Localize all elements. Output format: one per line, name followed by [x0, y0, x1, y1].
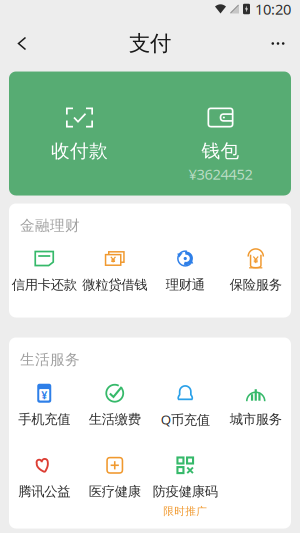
staticText: 信用卡还款 [12, 276, 77, 293]
button[interactable]: 医疗健康 [79, 455, 150, 500]
button[interactable]: 微粒贷借钱 [79, 248, 150, 293]
button[interactable]: ¥ [9, 383, 79, 428]
button[interactable]: 防疫健康码 [150, 455, 220, 518]
staticText: 医疗健康 [89, 483, 141, 500]
button[interactable]: 信用卡还款 [9, 248, 79, 293]
button[interactable]: More [261, 23, 295, 63]
staticText: 城市服务 [230, 411, 282, 428]
staticText: ¥ [41, 388, 47, 402]
button[interactable]: 生活缴费 [79, 383, 150, 428]
button[interactable]: 钱包 [150, 71, 291, 195]
staticText: 保险服务 [230, 276, 282, 293]
button[interactable]: 理财通 [150, 248, 220, 293]
staticText: 微粒贷借钱 [82, 276, 147, 293]
staticText: 支付 [129, 30, 171, 57]
staticText: 收付款 [51, 139, 108, 162]
staticText: ¥3624452 [188, 164, 252, 184]
button[interactable]: 城市服务 [220, 383, 291, 428]
staticText: 限时推广 [163, 505, 207, 518]
staticText: 10:20 [255, 0, 291, 19]
button[interactable]: Q币充值 [150, 382, 220, 428]
staticText: 生活缴费 [89, 411, 141, 428]
staticText: 钱包 [201, 139, 239, 162]
staticText: Q币充值 [161, 410, 210, 428]
staticText: 腾讯公益 [18, 483, 70, 500]
button[interactable]: 收付款 [9, 71, 150, 195]
staticText: 防疫健康码 [153, 483, 218, 500]
staticText: 生活服务 [20, 350, 80, 368]
staticText: 理财通 [166, 276, 205, 293]
staticText: 手机充值 [18, 411, 70, 428]
button[interactable]: 保险服务 [220, 248, 291, 293]
staticText: 金融理财 [20, 216, 80, 234]
button[interactable]: Back [5, 23, 39, 63]
button[interactable]: 腾讯公益 [9, 455, 79, 500]
